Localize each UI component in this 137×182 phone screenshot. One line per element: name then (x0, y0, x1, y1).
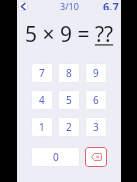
staticText: 5 × 9 = ?? (25, 20, 114, 49)
staticText: 6.7 (103, 0, 119, 10)
staticText: 3/10 (60, 0, 79, 11)
button[interactable]: 4 (31, 90, 53, 110)
button[interactable]: 2 (58, 117, 80, 137)
button[interactable]: 3 (85, 117, 107, 137)
staticText: 1 (39, 120, 45, 134)
button[interactable]: 0 (31, 147, 80, 167)
staticText: 6 (93, 93, 99, 107)
staticText: 0 (53, 150, 59, 164)
staticText: 3 (93, 120, 99, 134)
button[interactable]: 9 (85, 63, 107, 83)
button[interactable]: 6 (85, 90, 107, 110)
staticText: 7 (39, 66, 45, 80)
button[interactable]: 1 (31, 117, 53, 137)
staticText: 4 (39, 93, 45, 107)
staticText: 5 (66, 93, 72, 107)
button[interactable] (18, 1, 28, 11)
button[interactable]: 8 (58, 63, 80, 83)
button[interactable]: 7 (31, 63, 53, 83)
staticText: 8 (66, 66, 72, 80)
button[interactable]: 5 (58, 90, 80, 110)
button[interactable] (85, 147, 107, 167)
staticText: 2 (66, 120, 72, 134)
staticText: 9 (93, 66, 99, 80)
